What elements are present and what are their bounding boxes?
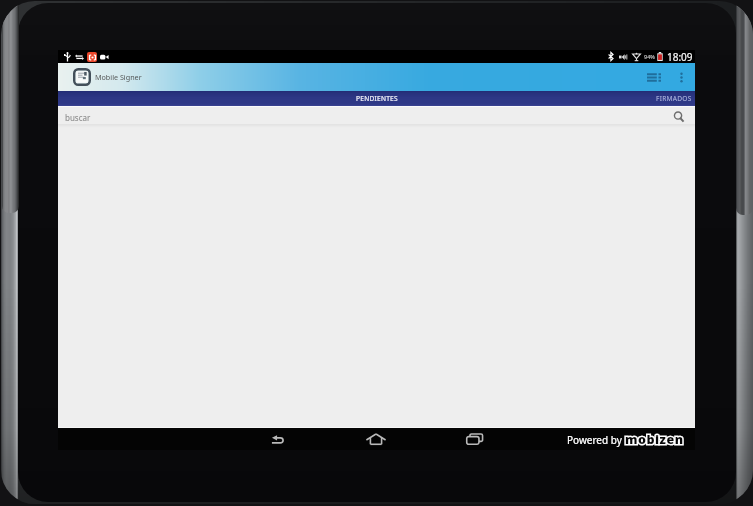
staticText: 18:09 — [667, 50, 693, 63]
button[interactable]: Back — [262, 428, 294, 450]
button[interactable]: Recent apps — [459, 428, 491, 450]
staticText: mobizen — [625, 431, 684, 448]
staticText: Powered by — [567, 433, 622, 447]
button[interactable]: More options — [670, 63, 692, 91]
button[interactable]: Home — [360, 428, 392, 450]
button[interactable]: List view — [641, 63, 667, 91]
button[interactable]: Search — [671, 109, 687, 125]
staticText: Mobile Signer — [95, 72, 142, 82]
staticText: 94% — [644, 53, 655, 60]
staticText: PENDIENTES — [356, 94, 398, 103]
button[interactable]: PENDIENTES — [317, 91, 437, 106]
staticText: FIRMADOS — [656, 94, 692, 103]
staticText: mobizen — [625, 431, 684, 448]
button[interactable]: FIRMADOS — [624, 91, 724, 106]
staticText: buscar — [65, 112, 91, 123]
